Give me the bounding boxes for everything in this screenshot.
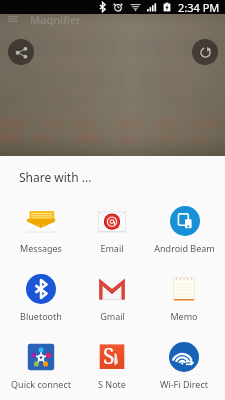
button[interactable]: Rotate: [192, 39, 218, 65]
staticText: Messages: [20, 242, 62, 254]
button[interactable]: Email: [97, 206, 127, 274]
staticText: S Note: [98, 378, 126, 390]
button[interactable]: Memo: [169, 274, 199, 342]
staticText: Bluetooth: [20, 310, 62, 322]
staticText: Magnifier: [30, 12, 81, 26]
button[interactable]: Menu: [6, 12, 20, 26]
button[interactable]: Android Beam: [154, 206, 215, 274]
staticText: Email: [100, 242, 124, 254]
staticText: Memo: [170, 310, 198, 322]
staticText: 2:34 PM: [178, 0, 220, 14]
button[interactable]: Bluetooth: [20, 274, 62, 342]
button[interactable]: Messages: [20, 206, 62, 274]
staticText: Android Beam: [154, 242, 215, 254]
staticText: S: [103, 342, 115, 371]
staticText: Gmail: [100, 310, 125, 322]
staticText: Wi-Fi Direct: [160, 378, 208, 390]
button[interactable]: Quick connect: [11, 342, 71, 400]
staticText: Quick connect: [11, 378, 71, 390]
button[interactable]: Wi-Fi Direct: [160, 342, 208, 400]
button[interactable]: S: [97, 342, 127, 400]
staticText: Share with ...: [19, 169, 92, 185]
button[interactable]: Gmail: [97, 274, 127, 342]
button[interactable]: Share: [8, 39, 34, 65]
